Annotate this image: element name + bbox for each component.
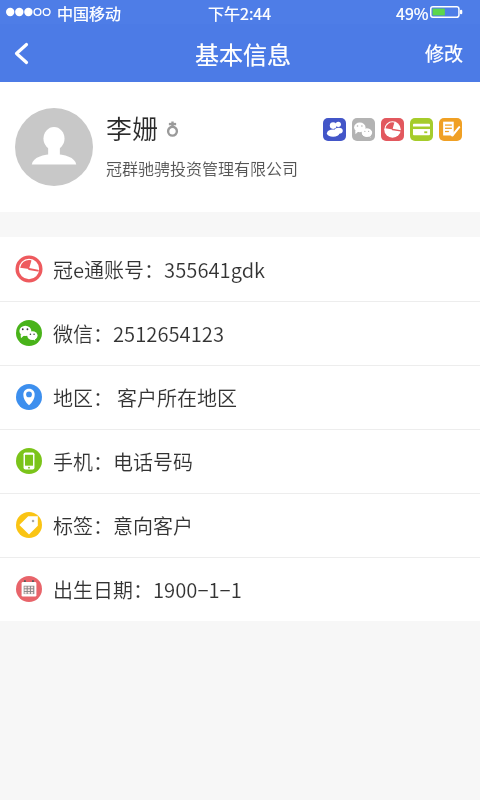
staticText: 基本信息 [195,36,291,71]
staticText: 地区： 客户所在地区 [53,383,237,412]
staticText: 微信：2512654123 [53,319,224,348]
staticText: 49% [396,1,429,24]
staticText: 李姗 [106,109,159,147]
button[interactable]: 返回 [0,24,42,82]
button[interactable]: 标签：意向客户 [0,493,480,557]
button[interactable]: 冠e通账号：355641gdk [0,237,480,301]
staticText: 修改 [425,39,464,67]
staticText: 冠e通账号：355641gdk [53,255,266,284]
button[interactable]: 地区： 客户所在地区 [0,365,480,429]
button[interactable]: 微信 [352,118,375,141]
button[interactable]: 订单 [439,118,462,141]
staticText: 中国移动 [57,1,122,24]
button[interactable]: 修改 [407,24,480,82]
staticText: 出生日期：1900−1−1 [53,575,242,604]
button[interactable]: 手机：电话号码 [0,429,480,493]
button[interactable]: 联系人 [323,118,346,141]
staticText: 冠群驰骋投资管理有限公司 [106,156,299,179]
button[interactable]: 冠e通 [381,118,404,141]
button[interactable]: 微信：2512654123 [0,301,480,365]
staticText: 下午2:44 [208,1,272,24]
staticText: 手机：电话号码 [53,447,193,476]
button[interactable]: 银行卡 [410,118,433,141]
button[interactable]: 出生日期：1900−1−1 [0,557,480,621]
staticText: 标签：意向客户 [53,511,193,540]
